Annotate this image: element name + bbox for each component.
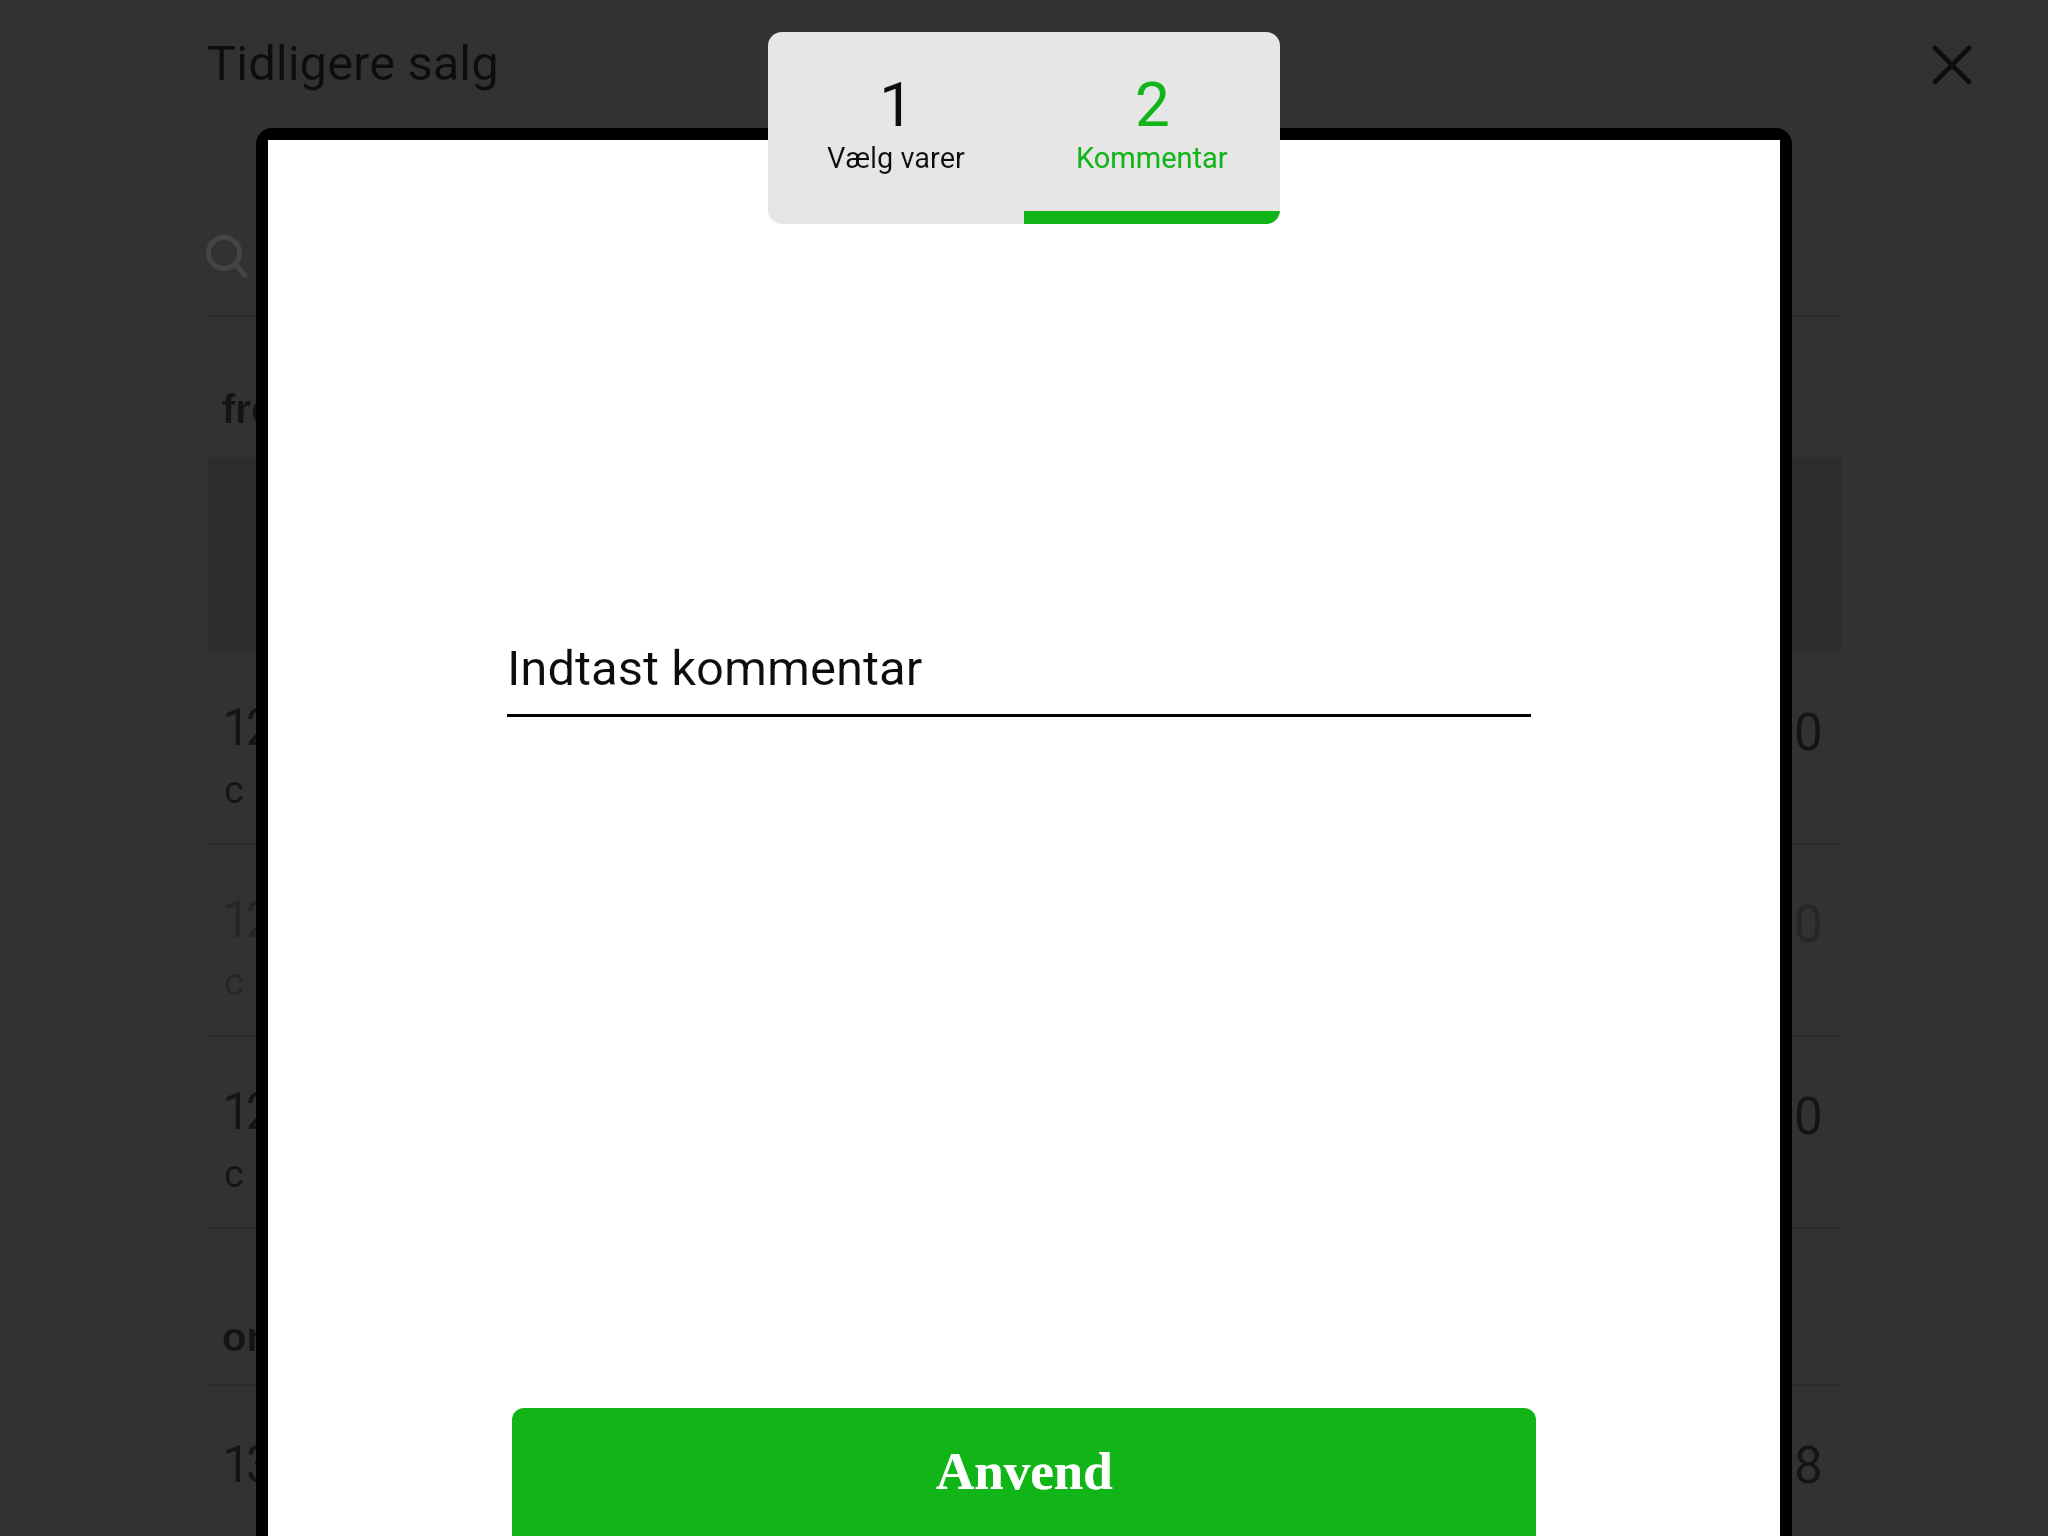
staticText: Indtast kommentar (507, 640, 923, 697)
button[interactable]: 12:32 (208, 1036, 1841, 1228)
button[interactable]: 13:05 (208, 1385, 1841, 1536)
staticText: 0 (1794, 703, 1823, 763)
staticText: 12:32 (222, 1082, 325, 1142)
staticText: c ontant (224, 1152, 372, 1197)
staticText: 8 (1794, 1436, 1823, 1496)
staticText: Vælg varer (827, 141, 965, 175)
button[interactable]: Close (1904, 17, 2000, 113)
staticText: c ontant (224, 960, 372, 1005)
staticText: 1 (879, 68, 914, 141)
staticText: 0 (1794, 1087, 1823, 1147)
staticText: c ontant (224, 768, 372, 813)
staticText: onsdag 10. maj 2023 (222, 1315, 612, 1360)
button[interactable]: Anvend (512, 1408, 1536, 1536)
button[interactable]: Search (208, 218, 1841, 314)
staticText: 0 (1794, 895, 1823, 955)
staticText: 2 (1135, 68, 1170, 141)
button[interactable]: 2 (1024, 32, 1280, 224)
button[interactable]: 12:32 (208, 652, 1841, 844)
staticText: Tidligere salg (207, 35, 499, 92)
button[interactable]: Indtast kommentar (507, 640, 1531, 717)
button[interactable]: 12:32 (208, 844, 1841, 1036)
staticText: 12:32 (222, 698, 325, 758)
staticText: 12:32 (222, 890, 325, 950)
button[interactable]: 1 (768, 32, 1024, 224)
staticText: Kommentar (1076, 141, 1228, 175)
staticText: fredag 12. maj 2023 (222, 387, 592, 432)
staticText: Anvend (936, 1442, 1113, 1501)
staticText: 13:05 (222, 1435, 325, 1495)
